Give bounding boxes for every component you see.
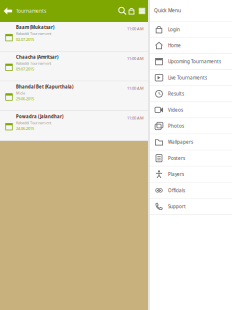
staticText: Upcoming Tournaments bbox=[168, 58, 221, 65]
staticText: 09-07-2015 bbox=[16, 66, 34, 72]
button[interactable]: Players bbox=[150, 167, 232, 182]
button[interactable]: Results bbox=[150, 86, 232, 101]
staticText: 02-07-2015 bbox=[16, 37, 34, 42]
button[interactable]: Menu bbox=[136, 0, 148, 22]
button[interactable]: Baam (Mukatsar) bbox=[0, 22, 148, 51]
staticText: 11:00 AM bbox=[127, 56, 144, 61]
staticText: Wallpapers bbox=[168, 139, 193, 145]
staticText: Kabaddi Tournament bbox=[16, 61, 51, 66]
staticText: Posters bbox=[168, 155, 185, 161]
button[interactable]: Powadra (Jalandhar) bbox=[0, 111, 148, 140]
staticText: Kabaddi Tournament bbox=[16, 31, 51, 36]
button[interactable]: Videos bbox=[150, 102, 232, 118]
button[interactable]: Back bbox=[0, 0, 16, 22]
staticText: Results bbox=[168, 91, 184, 97]
staticText: Login bbox=[168, 26, 180, 32]
staticText: Tournaments bbox=[16, 8, 46, 14]
staticText: Videos bbox=[168, 107, 183, 113]
staticText: Chaacha (Amritsar) bbox=[16, 54, 58, 60]
staticText: Kabaddi Tournament bbox=[16, 120, 51, 125]
button[interactable]: Chaacha (Amritsar) bbox=[0, 52, 148, 81]
staticText: Quick Menu bbox=[154, 7, 181, 14]
staticText: 24-06-2015 bbox=[16, 126, 34, 131]
staticText: 11:00 AM bbox=[127, 26, 144, 31]
staticText: Support bbox=[168, 203, 186, 210]
button[interactable]: Upcoming Tournaments bbox=[150, 54, 232, 69]
staticText: Mela bbox=[16, 90, 25, 96]
staticText: 11:00 AM bbox=[127, 85, 144, 91]
button[interactable]: Login bbox=[150, 22, 232, 37]
staticText: Baam (Mukatsar) bbox=[16, 24, 54, 30]
button[interactable]: Officials bbox=[150, 183, 232, 198]
staticText: Bhandal Bet (Kapurthala) bbox=[16, 84, 73, 90]
button[interactable]: Live Tournaments bbox=[150, 70, 232, 85]
staticText: Players bbox=[168, 171, 184, 177]
button[interactable]: Wallpapers bbox=[150, 134, 232, 150]
staticText: Officials bbox=[168, 187, 185, 193]
staticText: Photos bbox=[168, 123, 184, 129]
button[interactable]: Home bbox=[150, 38, 232, 53]
button[interactable]: Support bbox=[150, 199, 232, 214]
staticText: Live Tournaments bbox=[168, 75, 207, 81]
staticText: Home bbox=[168, 42, 181, 49]
staticText: Powadra (Jalandhar) bbox=[16, 114, 63, 119]
button[interactable]: Posters bbox=[150, 150, 232, 166]
button[interactable]: Lock bbox=[127, 0, 136, 22]
button[interactable]: Bhandal Bet (Kapurthala) bbox=[0, 81, 148, 110]
button[interactable]: Search bbox=[118, 0, 127, 22]
button[interactable]: Photos bbox=[150, 118, 232, 134]
staticText: 29-06-2015 bbox=[16, 96, 34, 101]
staticText: 11:00 AM bbox=[127, 115, 144, 120]
